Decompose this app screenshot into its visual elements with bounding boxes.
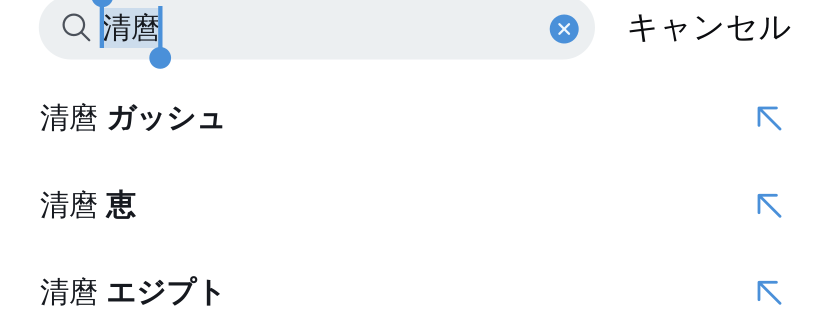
button[interactable]: 清麿 エジプト	[0, 249, 827, 330]
staticText: 清麿	[40, 100, 98, 136]
button[interactable]: キャンセル	[626, 1, 824, 53]
staticText: エジプト	[106, 274, 226, 310]
button[interactable]: 検索	[39, 0, 595, 59]
staticText: 清麿	[102, 10, 160, 46]
staticText: 恵	[106, 187, 135, 223]
button[interactable]: 清麿 ガッシュ	[0, 74, 827, 161]
staticText	[98, 186, 106, 225]
staticText: 清麿	[40, 187, 98, 223]
button[interactable]: 清麿 恵	[0, 162, 827, 249]
button[interactable]: 検索フィールドをクリア	[550, 14, 579, 43]
staticText: 清麿	[40, 274, 98, 310]
staticText: キャンセル	[626, 7, 791, 47]
staticText: ガッシュ	[106, 100, 226, 136]
